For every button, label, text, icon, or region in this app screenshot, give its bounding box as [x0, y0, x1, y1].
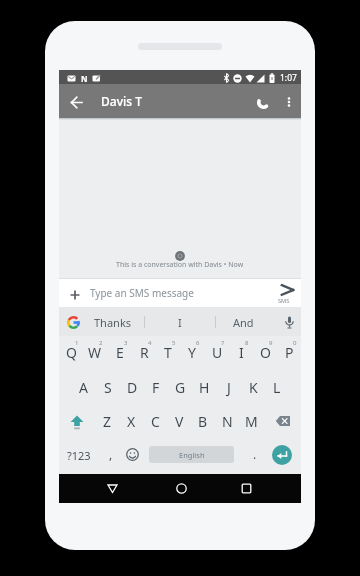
button[interactable]	[268, 405, 298, 438]
button[interactable]	[277, 86, 301, 118]
staticText: This is a conversation with Davis • Now	[116, 260, 244, 270]
button[interactable]: Y	[180, 336, 204, 369]
button[interactable]: .	[245, 437, 265, 470]
button[interactable]: J	[217, 371, 241, 404]
staticText: J	[227, 378, 231, 397]
staticText: 2	[99, 339, 103, 347]
button[interactable]	[272, 445, 292, 465]
staticText: 1:07	[280, 72, 297, 84]
staticText: D	[127, 378, 138, 397]
button[interactable]: L	[265, 371, 289, 404]
button[interactable]: V	[167, 405, 191, 438]
button[interactable]: P	[277, 336, 301, 369]
staticText: E	[116, 343, 124, 362]
staticText: 5	[172, 339, 176, 347]
staticText: ,	[109, 446, 113, 462]
staticText: W	[88, 343, 102, 362]
button[interactable]: G	[168, 371, 192, 404]
button[interactable]: H	[192, 371, 216, 404]
staticText: 7	[221, 339, 225, 347]
staticText: 1	[75, 339, 79, 347]
staticText: O	[260, 343, 271, 362]
button[interactable]: M	[239, 405, 263, 438]
button[interactable]: S	[96, 371, 120, 404]
staticText: C	[151, 412, 160, 431]
button[interactable]	[277, 309, 301, 335]
button[interactable]	[61, 281, 89, 309]
button[interactable]: ?123	[63, 439, 95, 472]
staticText: ?123	[67, 448, 91, 463]
button[interactable]	[164, 474, 198, 503]
button[interactable]: English	[149, 446, 234, 463]
button[interactable]	[120, 438, 144, 471]
staticText: 9	[269, 339, 273, 347]
staticText: Thanks	[94, 315, 132, 330]
staticText: 6	[196, 339, 200, 347]
button[interactable]: Q	[59, 336, 83, 369]
button[interactable]: O	[253, 336, 277, 369]
button[interactable]	[95, 474, 129, 503]
button[interactable]: W	[83, 336, 107, 369]
staticText: Y	[188, 343, 196, 362]
button[interactable]	[248, 86, 278, 118]
staticText: U	[212, 343, 223, 362]
button[interactable]: I	[229, 336, 253, 369]
staticText: G	[175, 378, 186, 397]
staticText: Z	[103, 412, 112, 431]
button[interactable]: A	[71, 371, 95, 404]
button[interactable]: ,	[101, 437, 121, 470]
button[interactable]	[60, 309, 86, 335]
button[interactable]: C	[143, 405, 167, 438]
button[interactable]: B	[191, 405, 215, 438]
staticText: Type an SMS message	[90, 286, 194, 300]
staticText: 8	[245, 339, 249, 347]
button[interactable]: N	[215, 405, 239, 438]
button[interactable]: R	[132, 336, 156, 369]
button[interactable]	[62, 405, 92, 438]
button[interactable]: And	[215, 309, 271, 335]
button[interactable]: Z	[95, 405, 119, 438]
staticText: SMS	[278, 297, 290, 305]
staticText: 0	[293, 339, 297, 347]
button[interactable]: X	[119, 405, 143, 438]
button[interactable]: Thanks	[85, 309, 141, 335]
staticText: M	[245, 412, 258, 431]
staticText: X	[127, 412, 136, 431]
staticText: 3	[124, 339, 128, 347]
staticText: T	[164, 343, 172, 362]
staticText: N	[81, 73, 88, 83]
staticText: English	[179, 450, 205, 460]
staticText: A	[79, 378, 88, 397]
button[interactable]	[61, 86, 91, 118]
button[interactable]	[272, 279, 302, 309]
button[interactable]: D	[120, 371, 144, 404]
staticText: And	[233, 315, 254, 330]
staticText: F	[152, 378, 160, 397]
button[interactable]: K	[241, 371, 265, 404]
button[interactable]: F	[144, 371, 168, 404]
staticText: 4	[148, 339, 152, 347]
staticText: S	[104, 378, 112, 397]
staticText: K	[249, 378, 258, 397]
staticText: I	[239, 343, 244, 362]
staticText: H	[199, 378, 210, 397]
button[interactable]: T	[156, 336, 180, 369]
button[interactable]	[229, 474, 263, 503]
staticText: P	[285, 343, 294, 362]
button[interactable]: I	[152, 309, 208, 335]
staticText: N	[222, 412, 233, 431]
staticText: Davis T	[101, 93, 142, 109]
staticText: V	[175, 412, 184, 431]
staticText: Q	[66, 343, 77, 362]
button[interactable]	[59, 279, 301, 307]
staticText: .	[253, 446, 257, 462]
staticText: B	[198, 412, 208, 431]
staticText: R	[140, 343, 149, 362]
staticText: I	[178, 315, 182, 330]
button[interactable]: E	[108, 336, 132, 369]
staticText: L	[273, 378, 281, 397]
button[interactable]: U	[205, 336, 229, 369]
